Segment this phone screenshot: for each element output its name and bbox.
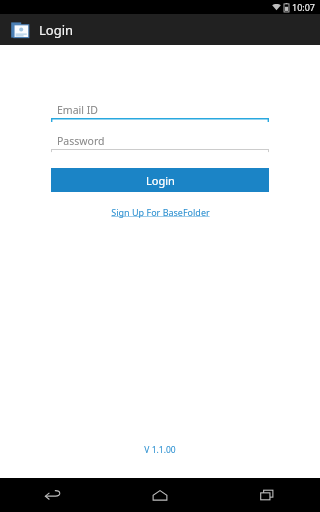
staticText: Password <box>57 134 105 148</box>
button[interactable]: Recent apps <box>250 478 284 512</box>
staticText: Email ID <box>57 103 98 117</box>
button[interactable]: Home <box>143 478 177 512</box>
staticText: V 1.1.00 <box>144 444 176 456</box>
button[interactable]: Sign Up For BaseFolder <box>109 205 212 219</box>
staticText: Sign Up For BaseFolder <box>111 206 210 218</box>
button[interactable]: App icon <box>10 20 30 40</box>
button[interactable]: Email ID <box>51 101 269 123</box>
staticText: Login <box>39 21 74 39</box>
button[interactable]: Back <box>36 478 70 512</box>
button[interactable]: Login <box>51 168 269 192</box>
button[interactable]: Password <box>51 132 269 154</box>
staticText: 10:07 <box>292 1 316 13</box>
staticText: Login <box>146 173 175 188</box>
